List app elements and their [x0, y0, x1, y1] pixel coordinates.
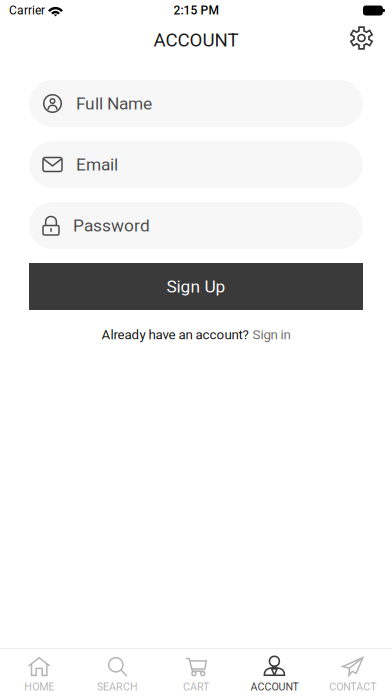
button[interactable]: SEARCH [78, 649, 157, 696]
button[interactable]: Password [29, 202, 363, 249]
staticText: Sign Up [166, 276, 225, 297]
staticText: Already have an account? [101, 327, 248, 343]
staticText: CONTACT [329, 680, 376, 693]
button[interactable]: Email [29, 141, 363, 188]
button[interactable]: Settings [341, 22, 392, 57]
staticText: Email [76, 154, 118, 175]
staticText: Carrier [9, 3, 45, 18]
button[interactable]: ACCOUNT [235, 649, 314, 696]
staticText: CART [183, 680, 209, 693]
staticText: ACCOUNT [153, 29, 238, 51]
button[interactable]: Full Name [29, 80, 363, 127]
staticText: Sign in [252, 327, 290, 343]
button[interactable]: CART [157, 649, 235, 696]
staticText: SEARCH [97, 680, 138, 693]
staticText: ACCOUNT [250, 680, 298, 693]
button[interactable]: CONTACT [314, 649, 392, 696]
staticText: HOME [24, 680, 54, 693]
staticText: Full Name [76, 93, 152, 114]
staticText: Password [73, 215, 150, 236]
staticText: 2:15 PM [173, 3, 218, 18]
button[interactable]: Sign Up [29, 263, 363, 310]
button[interactable]: Already have an account? [101, 324, 290, 343]
button[interactable]: HOME [0, 649, 78, 696]
